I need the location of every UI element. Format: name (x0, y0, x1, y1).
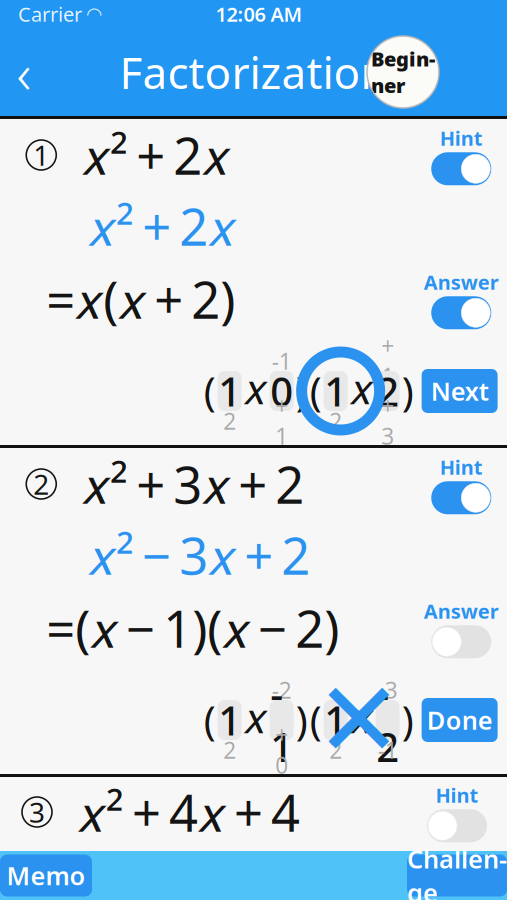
staticText: 𝑥 (350, 699, 374, 741)
staticText: -2 (376, 667, 399, 773)
staticText: ( (204, 693, 216, 746)
staticText: 𝑥² + 4𝑥 + 4 (78, 778, 300, 846)
staticText: +1 (275, 391, 288, 451)
staticText: 2 (329, 735, 342, 765)
button[interactable]: Beginner (367, 36, 439, 108)
staticText: -1 (378, 735, 398, 765)
staticText: 𝑥² + 3𝑥 + 2 (82, 450, 304, 518)
staticText: ) (402, 364, 414, 417)
staticText: 𝑥² − 3𝑥 + 2 (88, 521, 310, 589)
staticText: Factorization (119, 43, 387, 101)
staticText: Next (431, 374, 489, 408)
button[interactable]: Hint (419, 782, 495, 842)
staticText: 2 (33, 465, 49, 503)
staticText: ) (296, 693, 308, 746)
staticText: Done (427, 703, 493, 737)
button[interactable]: Back (0, 42, 48, 102)
staticText: 1 (324, 693, 347, 746)
staticText: ✕ (315, 661, 402, 779)
staticText: Hint (440, 125, 483, 151)
staticText: Answer (424, 598, 499, 624)
staticText: -3 (378, 675, 398, 705)
staticText: 1 (33, 136, 49, 174)
staticText: 𝑥 (350, 370, 374, 412)
staticText: 𝑥² + 2𝑥 (88, 192, 236, 260)
staticText: +0 (275, 720, 288, 780)
staticText: ) (402, 693, 414, 746)
staticText: ( (310, 364, 322, 417)
staticText: 2 (329, 406, 342, 436)
staticText: 12:06 AM (215, 1, 302, 27)
button[interactable]: Memo (0, 854, 92, 896)
button[interactable]: Hint (423, 454, 499, 514)
staticText: 0 (270, 364, 293, 417)
staticText: -1 (270, 667, 293, 773)
staticText: Hint (435, 782, 478, 808)
staticText: +3 (381, 391, 394, 451)
button[interactable]: Hint (423, 125, 499, 185)
staticText: -1 (272, 346, 292, 376)
staticText: ( (204, 364, 216, 417)
staticText: +1 (381, 331, 394, 391)
button[interactable]: Answer (423, 598, 499, 658)
staticText: 1 (218, 693, 241, 746)
staticText: Hint (440, 454, 483, 480)
staticText: 2 (376, 364, 399, 417)
staticText: 2 (223, 406, 236, 436)
staticText: ‹ (16, 35, 31, 109)
staticText: ( (310, 693, 322, 746)
button[interactable]: Challenge (407, 854, 507, 896)
staticText: 2 (223, 735, 236, 765)
staticText: ◠ (87, 3, 101, 25)
staticText: Answer (424, 269, 499, 295)
button[interactable]: Answer (423, 269, 499, 329)
staticText: 3 (29, 793, 45, 831)
staticText: 1 (324, 364, 347, 417)
staticText: 1 (218, 364, 241, 417)
staticText: Memo (6, 859, 85, 892)
staticText: 𝑥 (244, 699, 268, 741)
staticText: =(𝑥 − 1)(𝑥 − 2) (46, 594, 339, 662)
staticText: -2 (272, 675, 292, 705)
staticText: Beginner (371, 45, 435, 98)
staticText: 𝑥 (244, 370, 268, 412)
staticText: ) (296, 364, 308, 417)
staticText: Challenge (407, 842, 507, 900)
staticText: 𝑥² + 2𝑥 (82, 121, 230, 189)
button[interactable]: Done (422, 698, 498, 742)
staticText: Carrier (18, 1, 82, 27)
button[interactable]: Next (422, 369, 498, 413)
staticText: =𝑥(𝑥 + 2) (46, 265, 235, 333)
